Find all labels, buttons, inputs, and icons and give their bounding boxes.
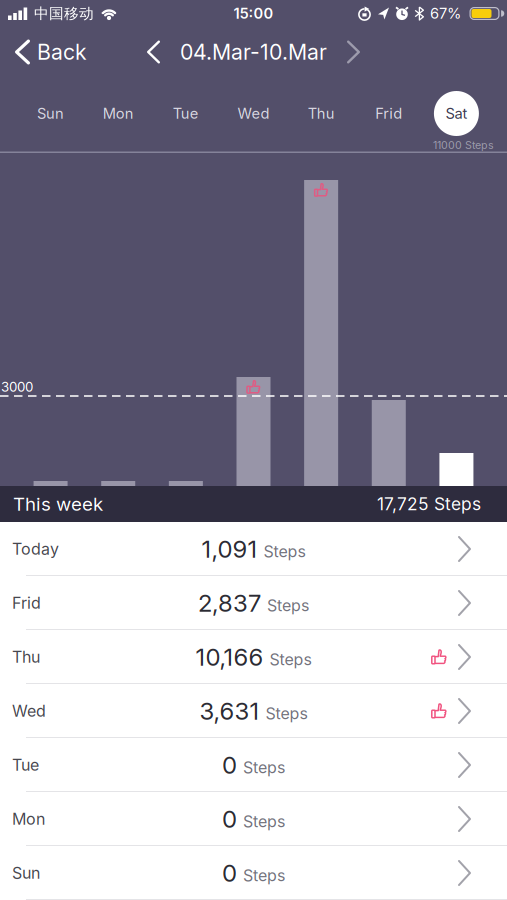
staticText: Tue — [173, 105, 199, 122]
staticText: Steps — [269, 650, 311, 669]
staticText: Steps — [243, 866, 285, 885]
button[interactable]: Next week — [347, 40, 360, 63]
staticText: Steps — [267, 596, 309, 615]
staticText: Mon — [12, 810, 45, 828]
staticText: Steps — [265, 704, 307, 723]
staticText: Wed — [237, 105, 269, 122]
staticText: 04.Mar-10.Mar — [180, 39, 327, 65]
staticText: Back — [37, 39, 87, 65]
staticText: 10,166 — [195, 643, 263, 671]
button[interactable]: Mon — [0, 792, 507, 846]
staticText: Sun — [12, 864, 40, 882]
staticText: Mon — [103, 105, 134, 122]
staticText: Frid — [12, 594, 41, 612]
staticText: Steps — [243, 812, 285, 831]
staticText: 11000 Steps — [433, 139, 494, 151]
staticText: Steps — [263, 542, 305, 561]
staticText: Thu — [12, 648, 40, 666]
staticText: 67% — [430, 5, 461, 22]
button[interactable]: Thu — [0, 630, 507, 684]
button[interactable]: Sun — [17, 83, 84, 144]
button[interactable]: Frid — [0, 576, 507, 630]
staticText: Thu — [308, 105, 335, 122]
button[interactable]: Tue — [0, 738, 507, 792]
button[interactable]: Tue — [152, 83, 220, 144]
staticText: 0 — [222, 805, 237, 833]
staticText: 0 — [222, 751, 237, 779]
button[interactable]: Frid — [355, 83, 423, 144]
button[interactable]: Sat — [423, 83, 490, 144]
button[interactable]: Wed — [0, 684, 507, 738]
button[interactable]: Mon — [84, 83, 152, 144]
staticText: 17,725 Steps — [377, 494, 481, 514]
staticText: Frid — [375, 105, 402, 122]
button[interactable]: Wed — [220, 83, 287, 144]
staticText: This week — [13, 493, 103, 515]
staticText: 0 — [222, 859, 237, 887]
staticText: 15:00 — [233, 5, 273, 22]
staticText: Today — [12, 540, 59, 558]
button[interactable]: Previous week — [147, 40, 160, 63]
staticText: Sun — [37, 105, 64, 122]
button[interactable]: Thu — [287, 83, 355, 144]
staticText: Steps — [243, 758, 285, 777]
staticText: 3000 — [1, 379, 33, 395]
staticText: 3,631 — [199, 697, 259, 725]
staticText: Sat — [445, 105, 467, 122]
staticText: Tue — [12, 756, 39, 774]
button[interactable]: Today — [0, 522, 507, 576]
staticText: 中国移动 — [34, 4, 94, 22]
button[interactable]: Back — [0, 39, 87, 65]
button[interactable]: Sun — [0, 846, 507, 900]
staticText: Wed — [12, 702, 46, 720]
staticText: 1,091 — [201, 535, 257, 563]
staticText: 2,837 — [198, 589, 261, 617]
